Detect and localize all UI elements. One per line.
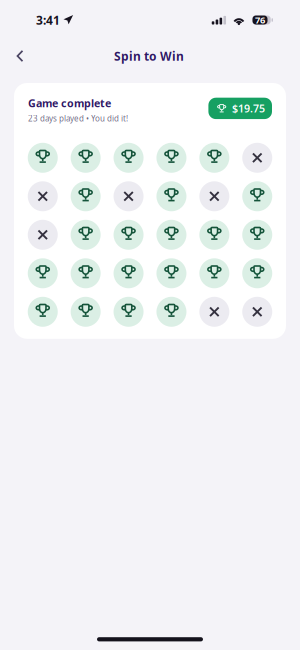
button[interactable]: $19.75 [208,98,272,119]
button[interactable]: Back [7,43,33,69]
staticText: 23 days played • You did it! [28,113,128,124]
staticText: Spin to Win [114,48,184,64]
staticText: 76 [255,14,265,26]
staticText: 3:41 [36,12,60,28]
staticText: $19.75 [232,101,265,115]
staticText: Game complete [28,96,111,110]
